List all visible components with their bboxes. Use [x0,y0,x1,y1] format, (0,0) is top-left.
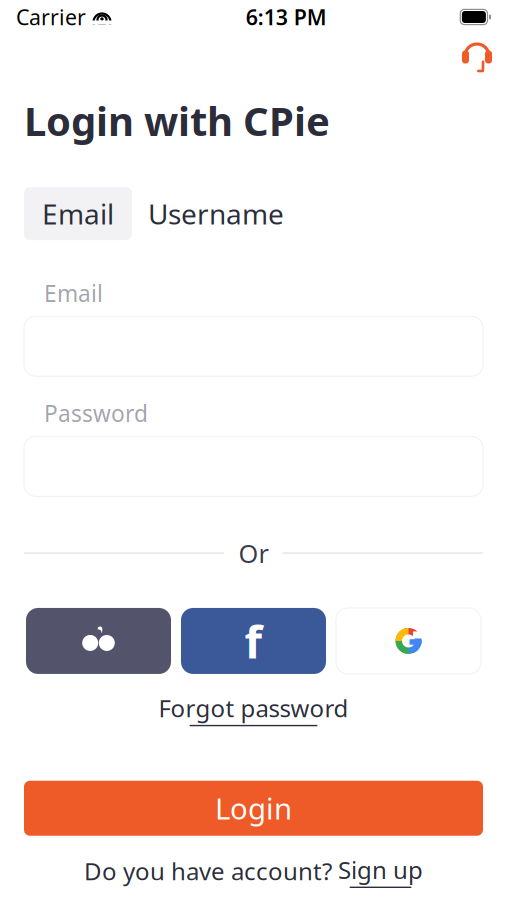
staticText: Email [44,278,103,308]
staticText: Do you have account? [84,855,332,887]
button[interactable]: Email [24,187,132,240]
staticText: 6:13 PM [246,3,327,31]
button[interactable]: Login [24,781,483,836]
staticText: Login with CPie [24,94,330,147]
button[interactable]: Sign in with Google [336,608,481,674]
staticText: Forgot password [158,692,348,724]
staticText: Login [215,789,292,828]
button[interactable]: Sign in with Facebook [181,608,326,674]
staticText: Or [238,536,268,570]
button[interactable]: Username [132,187,300,240]
button[interactable]: Sign in with Apple [26,608,171,674]
button[interactable]: Sign up [338,854,423,888]
staticText: Sign up [338,854,423,886]
button[interactable]: Support [461,33,507,71]
staticText: Carrier [16,3,86,31]
staticText: Username [148,195,284,232]
staticText: Password [44,398,148,428]
staticText: Email [42,195,114,232]
button[interactable]: Forgot password [158,692,348,726]
staticText: f [244,611,262,671]
